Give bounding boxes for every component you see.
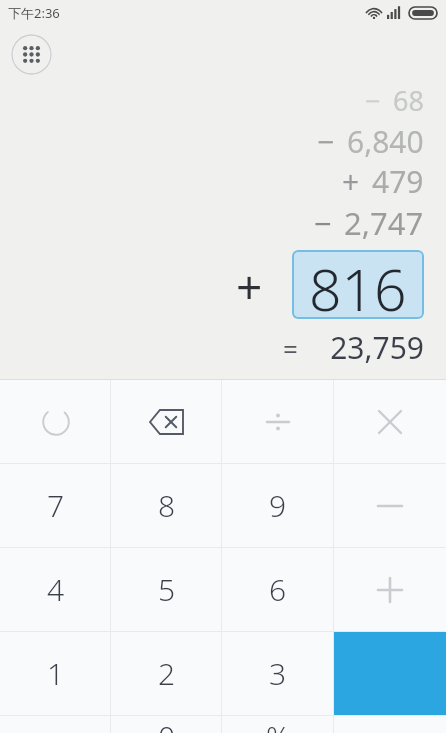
staticText: 1 bbox=[47, 653, 65, 694]
button[interactable]: − bbox=[0, 82, 424, 119]
staticText: 6,840 bbox=[347, 121, 424, 162]
staticText: − bbox=[365, 82, 381, 119]
button[interactable]: 5 bbox=[111, 548, 222, 631]
button[interactable]: Plus bbox=[334, 548, 446, 631]
button[interactable]: % bbox=[222, 716, 334, 733]
staticText: − bbox=[314, 202, 332, 244]
staticText: + bbox=[236, 255, 263, 318]
button[interactable]: Minus bbox=[334, 464, 446, 547]
staticText: 3 bbox=[269, 653, 287, 694]
button[interactable]: 7 bbox=[0, 464, 111, 547]
staticText: 8 bbox=[158, 485, 176, 526]
staticText: 下午2:36 bbox=[8, 4, 60, 22]
button[interactable]: 9 bbox=[222, 464, 334, 547]
button[interactable]: − bbox=[0, 202, 424, 244]
staticText: % bbox=[266, 716, 291, 733]
button[interactable]: Backspace bbox=[111, 380, 222, 463]
staticText: 6 bbox=[269, 569, 287, 610]
button[interactable]: 0 bbox=[111, 716, 222, 733]
staticText: 816 bbox=[309, 250, 407, 319]
staticText: 4 bbox=[47, 569, 65, 610]
staticText: = bbox=[283, 331, 298, 366]
staticText: 23,759 bbox=[0, 327, 424, 368]
button[interactable]: − bbox=[0, 121, 424, 162]
staticText: 7 bbox=[47, 485, 65, 526]
staticText: 2 bbox=[158, 653, 176, 694]
button[interactable]: 816 bbox=[292, 250, 424, 319]
button[interactable]: Multiply bbox=[334, 380, 446, 463]
staticText: + bbox=[342, 161, 360, 202]
staticText: − bbox=[317, 121, 335, 162]
button[interactable]: Clear bbox=[0, 380, 111, 463]
staticText: 0 bbox=[158, 716, 176, 733]
button[interactable]: 6 bbox=[222, 548, 334, 631]
staticText: 5 bbox=[158, 569, 176, 610]
button[interactable]: 1 bbox=[0, 632, 111, 715]
button[interactable]: Divide bbox=[222, 380, 334, 463]
staticText: 68 bbox=[393, 82, 424, 119]
staticText: 9 bbox=[269, 485, 287, 526]
button[interactable]: App drawer bbox=[11, 34, 52, 75]
staticText: 479 bbox=[372, 161, 424, 202]
button[interactable]: 3 bbox=[222, 632, 334, 715]
button[interactable]: 2 bbox=[111, 632, 222, 715]
staticText: 2,747 bbox=[344, 202, 424, 244]
button[interactable]: 4 bbox=[0, 548, 111, 631]
button[interactable]: + bbox=[0, 161, 424, 202]
button[interactable]: 8 bbox=[111, 464, 222, 547]
